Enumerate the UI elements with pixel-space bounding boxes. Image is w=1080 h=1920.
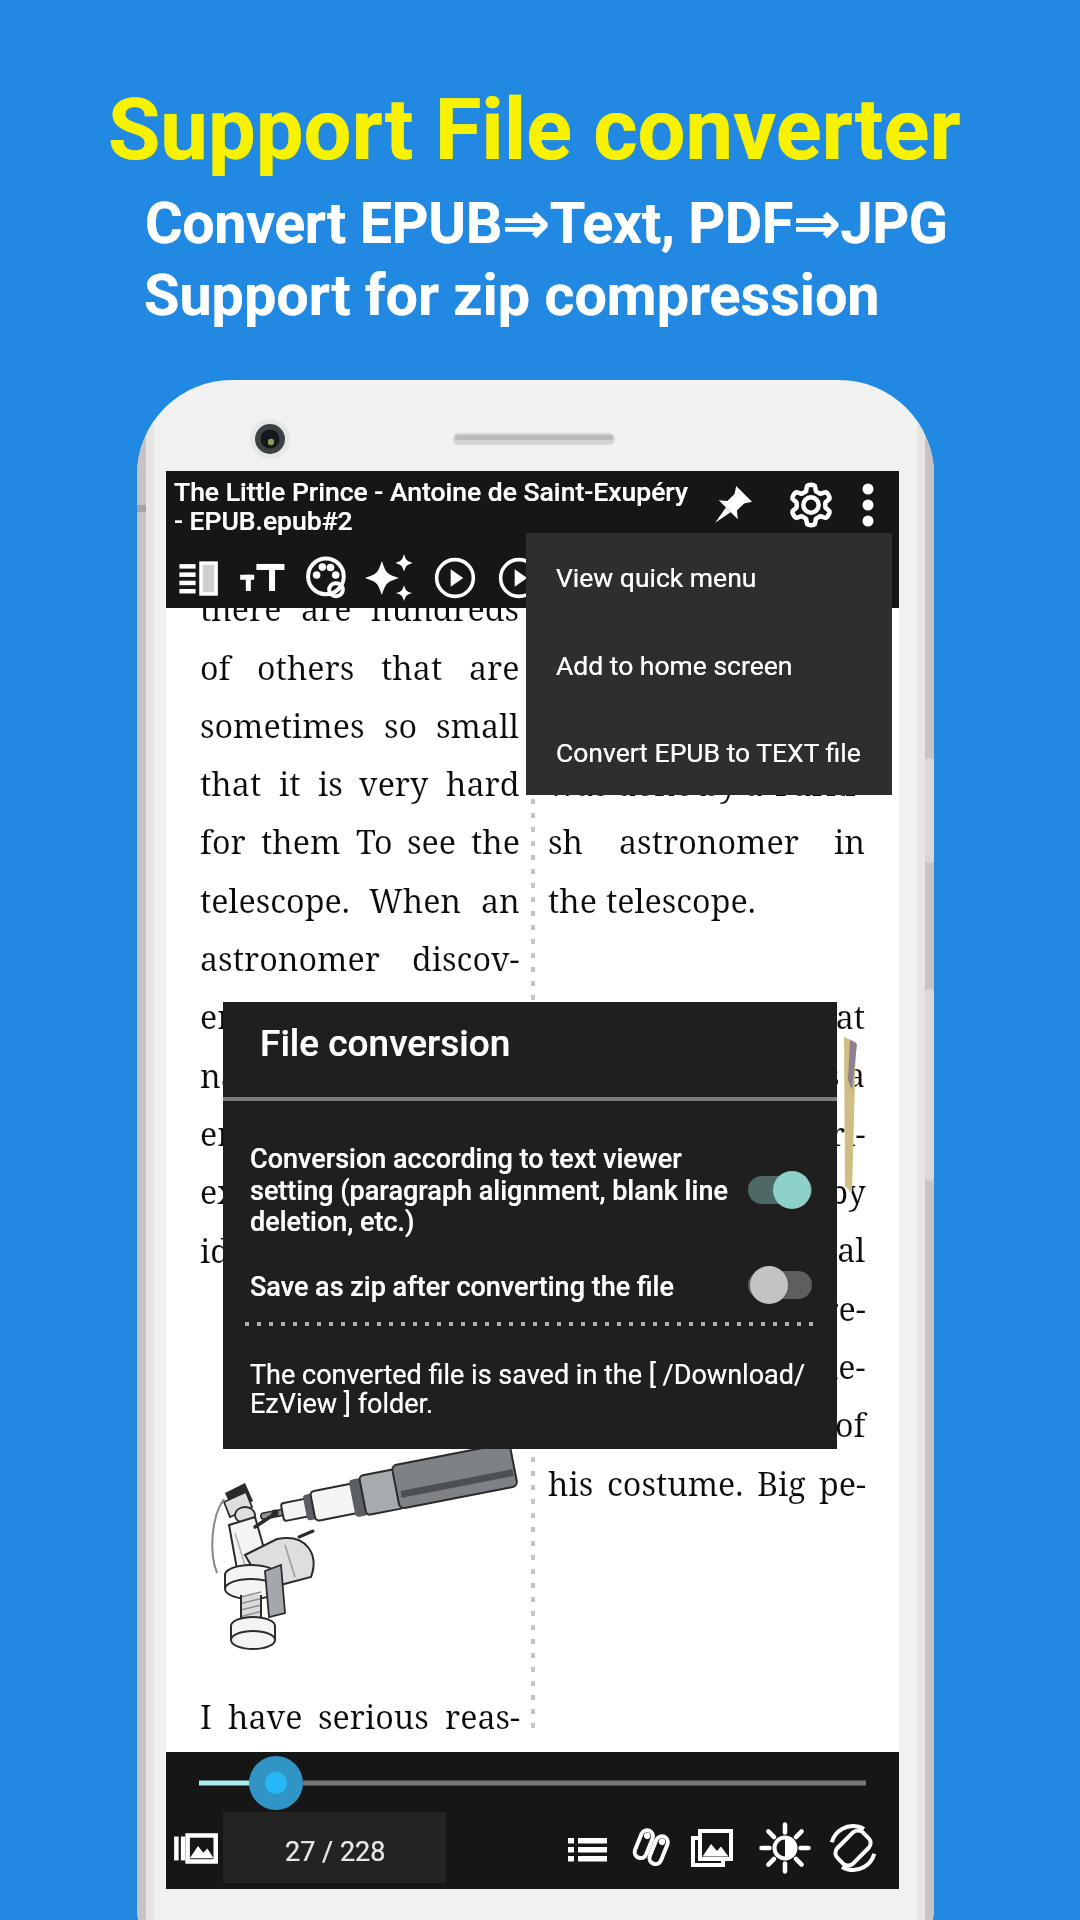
- staticText: an: [481, 879, 520, 923]
- staticText: had: [599, 995, 658, 1039]
- button[interactable]: Convert EPUB to TEXT file: [526, 708, 892, 796]
- staticText: for: [200, 820, 246, 864]
- staticText: Conversion according to text viewer sett…: [250, 1143, 728, 1237]
- staticText: of: [835, 1403, 866, 1447]
- button[interactable]: Rotate screen: [828, 1823, 878, 1873]
- staticText: example:: [200, 1170, 341, 1214]
- staticText: Congre-: [747, 1287, 866, 1331]
- staticText: of: [338, 995, 369, 1039]
- staticText: see: [407, 820, 456, 864]
- staticText: sh: [548, 820, 583, 864]
- button[interactable]: More options: [843, 480, 893, 530]
- button[interactable]: Effects: [363, 551, 417, 605]
- staticText: planet: [768, 645, 866, 689]
- staticText: very: [359, 762, 429, 806]
- staticText: International: [661, 1228, 866, 1272]
- staticText: a: [745, 762, 764, 806]
- button[interactable]: Page layout: [174, 551, 228, 605]
- staticText: them: [261, 820, 341, 864]
- staticText: identity: [200, 1229, 320, 1273]
- staticText: where: [548, 704, 646, 748]
- staticText: which: [548, 587, 643, 631]
- staticText: the: [700, 645, 749, 689]
- staticText: lived: [714, 704, 790, 748]
- staticText: so: [384, 704, 418, 748]
- staticText: Support for zip compression: [144, 262, 880, 329]
- staticText: made: [666, 995, 752, 1039]
- staticText: ng: [548, 1170, 587, 1214]
- staticText: pe-: [819, 1462, 866, 1506]
- staticText: others: [257, 646, 355, 690]
- button[interactable]: More: [492, 551, 546, 605]
- staticText: Save as zip after converting the file: [250, 1271, 674, 1303]
- staticText: The converted file is saved in the [ /Do…: [250, 1359, 810, 1420]
- staticText: great: [786, 995, 866, 1039]
- staticText: costume.: [607, 1462, 744, 1506]
- staticText: telescope.: [200, 879, 350, 923]
- staticText: number.: [392, 1229, 520, 1273]
- staticText: there: [200, 587, 282, 631]
- staticText: reas-: [445, 1695, 520, 1739]
- staticText: instance,: [383, 1112, 520, 1156]
- staticText: to: [684, 1170, 714, 1214]
- button[interactable]: Pin: [705, 477, 761, 533]
- button[interactable]: Bookmarks: [627, 1823, 677, 1873]
- staticText: his: [548, 1462, 594, 1506]
- button[interactable]: Images: [688, 1823, 738, 1873]
- button[interactable]: View quick menu: [526, 533, 892, 621]
- staticText: number: [396, 1054, 520, 1098]
- staticText: When: [369, 879, 462, 923]
- button[interactable]: Switch off: [748, 1263, 832, 1307]
- button[interactable]: Table of contents: [563, 1823, 613, 1873]
- staticText: ers: [200, 995, 247, 1039]
- staticText: that: [381, 646, 443, 690]
- staticText: ss.: [548, 1345, 586, 1389]
- staticText: discov-: [412, 937, 520, 981]
- staticText: I: [200, 1695, 212, 1739]
- staticText: that: [618, 645, 680, 689]
- button[interactable]: Theme: [300, 551, 354, 605]
- staticText: Convert EPUB⇒Text, PDF⇒JPG: [145, 190, 948, 257]
- staticText: ers: [200, 1112, 247, 1156]
- staticText: the: [548, 879, 606, 923]
- staticText: it: [320, 1054, 342, 1098]
- staticText: astronomer: [200, 937, 380, 981]
- staticText: belie-: [781, 1345, 866, 1389]
- staticText: in: [834, 820, 866, 864]
- staticText: a: [759, 995, 778, 1039]
- staticText: the: [471, 820, 520, 864]
- button[interactable]: Text size: [238, 551, 292, 605]
- button[interactable]: View mode: [171, 1823, 223, 1875]
- staticText: of: [200, 646, 231, 690]
- staticText: a: [359, 1054, 378, 1098]
- button[interactable]: Switch on: [748, 1168, 832, 1212]
- staticText: Big: [757, 1462, 806, 1506]
- button[interactable]: Settings: [783, 477, 839, 533]
- staticText: Convert EPUB to TEXT file: [556, 737, 861, 768]
- staticText: are: [301, 587, 352, 631]
- staticText: it.: [265, 1112, 295, 1156]
- button[interactable]: Add to home screen: [526, 621, 892, 709]
- staticText: Bri-: [809, 1112, 866, 1156]
- staticText: them: [596, 1170, 676, 1214]
- button[interactable]: Brightness: [760, 1823, 810, 1873]
- staticText: sometimes: [200, 704, 365, 748]
- staticText: nobody: [656, 1345, 772, 1389]
- button[interactable]: Auto scroll: [428, 551, 482, 605]
- staticText: small: [436, 704, 520, 748]
- staticText: hundreds: [371, 587, 520, 631]
- staticText: that: [200, 762, 262, 806]
- staticText: done: [616, 762, 693, 806]
- staticText: hard: [446, 762, 520, 806]
- staticText: Asteroid: [390, 1170, 520, 1214]
